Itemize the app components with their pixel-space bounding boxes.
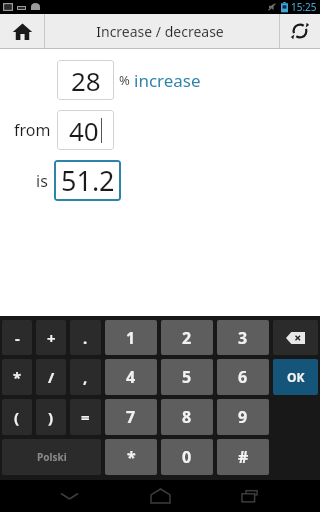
staticText: 7 [126,406,136,428]
button[interactable]: . [70,320,101,355]
staticText: + [47,328,56,348]
staticText: 6 [238,366,248,388]
button[interactable]: 28 [57,60,114,100]
staticText: # [238,446,249,468]
button[interactable]: * [105,439,157,475]
button[interactable]: 1 [105,320,157,355]
button[interactable]: - [2,320,32,355]
button[interactable]: , [70,359,101,395]
button[interactable]: + [36,320,66,355]
staticText: , [83,367,88,387]
button[interactable]: 51.2 [54,160,121,201]
staticText: = [81,407,90,427]
button[interactable]: 7 [105,399,157,435]
staticText: 9 [238,406,248,428]
staticText: 8 [182,406,192,428]
button[interactable]: 40 [57,110,114,150]
button[interactable]: 5 [161,359,213,395]
staticText: - [15,328,20,348]
button[interactable]: 4 [105,359,157,395]
staticText: Increase / decrease [0,22,320,41]
staticText: 15:25 [291,0,317,14]
button[interactable]: 0 [161,439,213,475]
button[interactable]: # [217,439,269,475]
staticText: OK [287,369,305,385]
staticText: * [127,446,136,468]
button[interactable]: Home [138,480,182,512]
button[interactable]: Polski [2,439,101,475]
staticText: increase [134,69,201,92]
button[interactable]: 2 [161,320,213,355]
button[interactable]: Home [0,14,44,48]
staticText: 51.2 [61,162,115,199]
button[interactable]: 6 [217,359,269,395]
staticText: 4 [126,366,136,388]
button[interactable]: = [70,399,101,435]
staticText: 0 [182,446,192,468]
button[interactable]: ) [36,399,66,435]
staticText: 3 [238,327,248,349]
staticText: 2 [182,327,192,349]
button[interactable]: Recent apps [229,480,273,512]
staticText: is [36,170,48,192]
staticText: 28 [71,63,101,98]
button[interactable]: OK [273,359,318,395]
button[interactable]: Backspace [273,320,318,355]
staticText: / [48,367,55,387]
staticText: Polski [37,450,67,464]
staticText: ) [48,407,54,427]
button[interactable]: 3 [217,320,269,355]
staticText: 40 [69,113,99,148]
button[interactable]: ( [2,399,32,435]
staticText: . [83,328,88,348]
staticText: * [13,367,22,387]
staticText: 5 [182,366,192,388]
staticText: ( [14,407,20,427]
staticText: 1 [126,327,136,349]
staticText: from [14,119,51,141]
button[interactable]: * [2,359,32,395]
button[interactable]: 8 [161,399,213,435]
button[interactable]: 9 [217,399,269,435]
button[interactable]: Hide keyboard [47,480,91,512]
staticText: % [119,71,130,89]
button[interactable]: / [36,359,66,395]
button[interactable]: Swap [280,14,320,48]
